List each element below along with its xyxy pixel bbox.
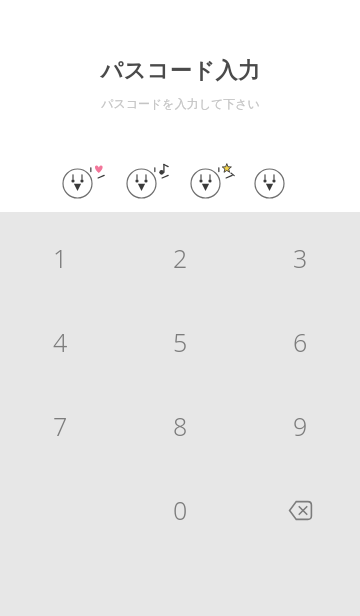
button[interactable]: 1 (0, 216, 120, 300)
staticText: 4 (53, 325, 68, 359)
button[interactable]: 0 (120, 468, 240, 552)
button[interactable]: 2 (120, 216, 240, 300)
staticText: 6 (293, 325, 308, 359)
button[interactable]: Backspace (240, 468, 360, 552)
button[interactable]: 9 (240, 384, 360, 468)
button[interactable]: 4 (0, 300, 120, 384)
button[interactable]: 8 (120, 384, 240, 468)
staticText: パスコード入力 (100, 57, 261, 85)
button[interactable]: 3 (240, 216, 360, 300)
staticText: 9 (293, 409, 308, 443)
staticText: 7 (53, 409, 68, 443)
staticText: 8 (173, 409, 188, 443)
staticText: パスコードを入力して下さい (101, 96, 260, 111)
staticText: 0 (173, 493, 188, 527)
button[interactable]: 5 (120, 300, 240, 384)
staticText: 3 (293, 241, 308, 275)
button[interactable]: 7 (0, 384, 120, 468)
staticText: 2 (173, 241, 188, 275)
staticText: 5 (173, 325, 188, 359)
button[interactable]: 6 (240, 300, 360, 384)
staticText: 1 (53, 241, 68, 275)
